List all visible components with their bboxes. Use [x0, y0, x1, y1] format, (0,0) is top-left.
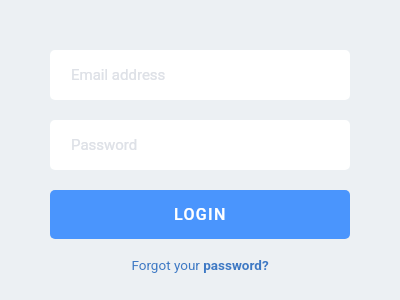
staticText: Password: [71, 136, 138, 154]
button[interactable]: Forgot your password?: [123, 247, 277, 283]
button[interactable]: LOGIN: [50, 190, 350, 239]
button[interactable]: Password: [50, 120, 350, 170]
staticText: Forgot your password?: [131, 257, 269, 273]
staticText: LOGIN: [174, 205, 227, 224]
staticText: Email address: [71, 66, 166, 84]
button[interactable]: Email address: [50, 50, 350, 100]
